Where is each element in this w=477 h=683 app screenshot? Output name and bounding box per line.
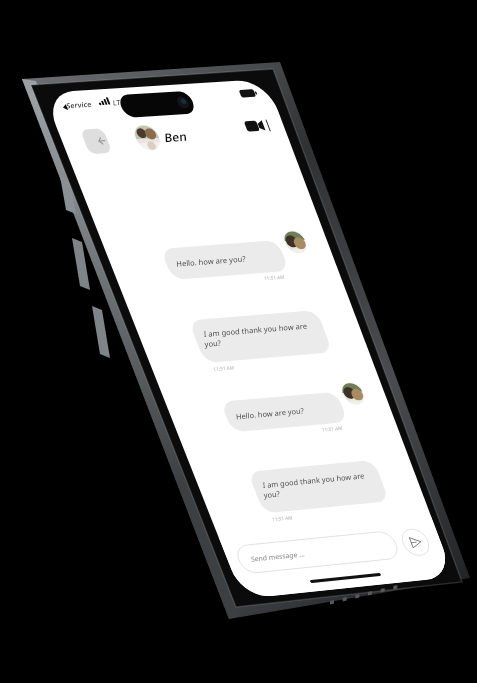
button[interactable]: Back — [54, 115, 82, 143]
button[interactable]: Send — [423, 532, 459, 568]
button[interactable]: Video call — [227, 101, 257, 125]
button[interactable] — [112, 106, 204, 142]
button[interactable] — [244, 545, 426, 593]
